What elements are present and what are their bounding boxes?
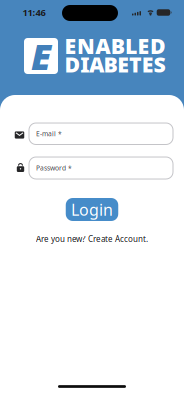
staticText: Password * xyxy=(36,164,72,172)
staticText: ENABLED xyxy=(64,32,166,60)
staticText: Are you new? xyxy=(36,234,85,244)
button[interactable]: E-mail * xyxy=(29,123,173,144)
staticText: DIABETES xyxy=(64,50,165,78)
button[interactable]: Password * xyxy=(29,157,173,179)
staticText: 11:46 xyxy=(22,6,45,19)
staticText: Login xyxy=(71,199,113,220)
staticText: Create Account. xyxy=(88,234,148,244)
staticText: E-mail * xyxy=(36,129,62,138)
staticText: E xyxy=(31,32,51,80)
button[interactable]: Create Account. xyxy=(88,234,148,244)
button[interactable]: Login xyxy=(66,198,118,221)
